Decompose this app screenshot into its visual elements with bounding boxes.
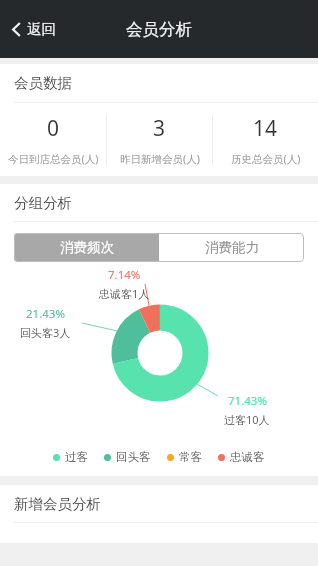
staticText: 7.14%: [108, 267, 141, 283]
staticText: 71.43%: [228, 393, 267, 409]
button[interactable]: 返回: [6, 14, 60, 44]
staticText: 回头客3人: [20, 325, 71, 340]
staticText: 会员数据: [14, 74, 72, 92]
button[interactable]: 14: [213, 114, 318, 166]
staticText: 历史总会员(人): [231, 152, 301, 166]
staticText: 3: [153, 114, 166, 143]
staticText: 过客10人: [224, 412, 270, 427]
staticText: 21.43%: [26, 306, 65, 322]
staticText: 今日到店总会员(人): [8, 152, 99, 166]
staticText: 14: [253, 114, 278, 143]
staticText: 会员分析: [126, 19, 192, 40]
staticText: 新增会员分析: [14, 495, 101, 513]
staticText: 分组分析: [14, 194, 72, 212]
staticText: 忠诚客: [230, 450, 265, 464]
staticText: 回头客: [116, 450, 151, 464]
button[interactable]: 过客: [53, 450, 88, 464]
button[interactable]: 消费频次: [14, 233, 159, 262]
staticText: 昨日新增会员(人): [120, 152, 200, 166]
button[interactable]: 忠诚客: [218, 450, 265, 464]
button[interactable]: 消费能力: [159, 233, 304, 262]
button[interactable]: 回头客: [104, 450, 151, 464]
staticText: 0: [47, 114, 60, 143]
staticText: 常客: [179, 450, 202, 464]
button[interactable]: 常客: [167, 450, 202, 464]
button[interactable]: 0: [0, 114, 106, 166]
button[interactable]: 3: [107, 114, 212, 166]
staticText: 消费能力: [205, 239, 259, 256]
staticText: 返回: [27, 20, 56, 38]
staticText: 消费频次: [60, 239, 114, 256]
staticText: 过客: [65, 450, 88, 464]
staticText: 忠诚客1人: [99, 286, 150, 301]
